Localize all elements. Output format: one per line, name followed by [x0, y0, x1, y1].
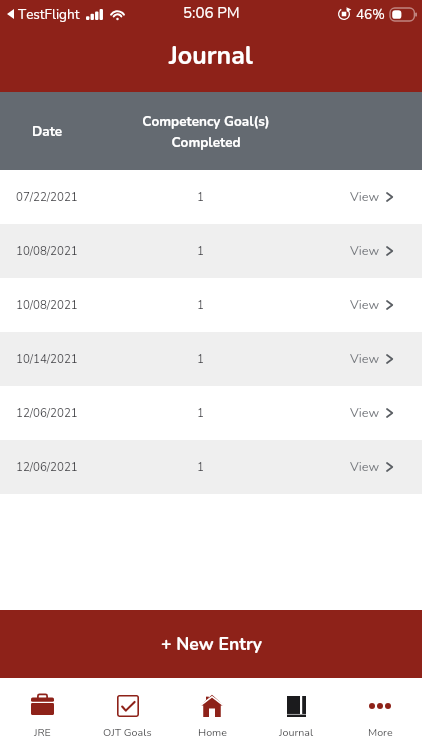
staticText: 1	[197, 459, 204, 475]
staticText: 46%	[356, 5, 385, 23]
staticText: JRE	[34, 725, 51, 740]
button[interactable]: 07/22/2021	[0, 170, 422, 224]
staticText: Competency Goal(s) Completed	[142, 112, 270, 151]
staticText: Home	[198, 725, 227, 740]
staticText: + New Entry	[161, 632, 262, 656]
staticText: View	[350, 350, 380, 367]
button[interactable]: 10/08/2021	[0, 278, 422, 332]
staticText: View	[350, 188, 380, 205]
button[interactable]: More	[338, 678, 422, 750]
staticText: 10/08/2021	[16, 297, 78, 313]
button[interactable]: 12/06/2021	[0, 386, 422, 440]
staticText: 10/14/2021	[16, 351, 78, 367]
staticText: 1	[197, 189, 204, 205]
button[interactable]: 10/08/2021	[0, 224, 422, 278]
staticText: OJT Goals	[103, 725, 152, 740]
staticText: TestFlight	[18, 5, 80, 23]
staticText: 07/22/2021	[16, 189, 78, 205]
button[interactable]: Journal	[254, 678, 338, 750]
staticText: Journal	[279, 725, 314, 740]
staticText: View	[350, 404, 380, 421]
staticText: 1	[197, 297, 204, 313]
staticText: Date	[32, 122, 63, 140]
other: More	[369, 703, 391, 709]
button[interactable]: OJT Goals	[85, 678, 170, 750]
staticText: View	[350, 242, 380, 259]
staticText: Journal	[169, 39, 253, 73]
staticText: 1	[197, 405, 204, 421]
staticText: 1	[197, 243, 204, 259]
staticText: 12/06/2021	[16, 459, 78, 475]
button[interactable]: Home	[170, 678, 254, 750]
staticText: 5:06 PM	[183, 3, 240, 23]
staticText: 12/06/2021	[16, 405, 78, 421]
button[interactable]: + New Entry	[0, 610, 422, 678]
staticText: View	[350, 458, 380, 475]
staticText: More	[368, 725, 393, 740]
button[interactable]: 10/14/2021	[0, 332, 422, 386]
button[interactable]: JRE	[0, 678, 85, 750]
staticText: 1	[197, 351, 204, 367]
staticText: 10/08/2021	[16, 243, 78, 259]
staticText: View	[350, 296, 380, 313]
button[interactable]: 12/06/2021	[0, 440, 422, 494]
